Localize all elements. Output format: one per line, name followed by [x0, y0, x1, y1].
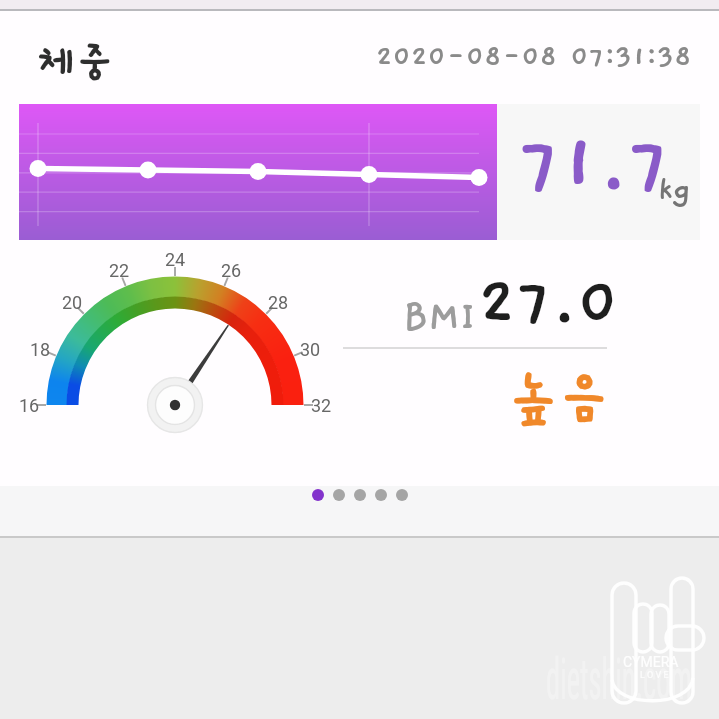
button[interactable]: 71.7 — [19, 104, 700, 240]
staticText: 71.7 — [519, 121, 671, 209]
staticText: 24 — [165, 249, 186, 270]
staticText: 26 — [221, 260, 242, 281]
staticText: CYMERA — [623, 654, 679, 670]
button[interactable]: 체중 — [37, 41, 115, 88]
button[interactable] — [354, 489, 366, 501]
staticText: 20 — [62, 292, 83, 313]
staticText: kg — [658, 172, 691, 207]
button[interactable] — [375, 489, 387, 501]
staticText: 16 — [19, 395, 40, 416]
staticText: BMI — [403, 295, 477, 339]
button[interactable] — [312, 489, 324, 501]
staticText: 28 — [268, 292, 289, 313]
staticText: 2020-08-08 07:31:38 — [376, 41, 692, 73]
staticText: 30 — [300, 339, 321, 360]
staticText: 22 — [109, 260, 130, 281]
button[interactable]: 높음 — [508, 370, 610, 432]
staticText: 32 — [311, 395, 332, 416]
staticText: dietshin.com — [546, 646, 692, 713]
staticText: L O V E — [640, 670, 669, 681]
staticText: 27.0 — [478, 265, 620, 339]
staticText: 18 — [30, 339, 51, 360]
button[interactable] — [396, 489, 408, 501]
button[interactable] — [333, 489, 345, 501]
